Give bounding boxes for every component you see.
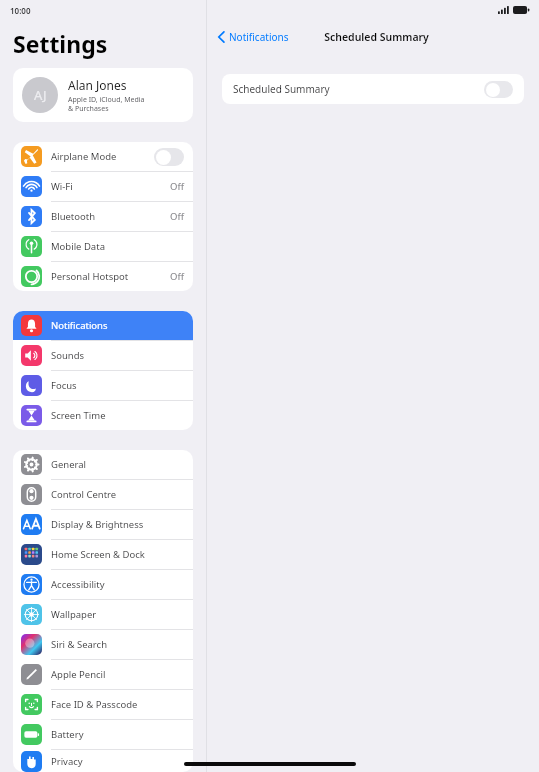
button[interactable]: Bluetooth (13, 202, 193, 231)
button[interactable]: Home Screen & Dock (13, 540, 193, 569)
staticText: AJ (34, 86, 47, 104)
button[interactable]: Wallpaper (13, 600, 193, 629)
staticText: Wi-Fi (51, 180, 73, 193)
button[interactable]: Control Centre (13, 480, 193, 509)
button[interactable]: Sounds (13, 341, 193, 370)
staticText: Scheduled Summary (233, 82, 330, 96)
button[interactable]: Screen Time (13, 401, 193, 430)
button[interactable]: Battery (13, 720, 193, 749)
button[interactable]: Personal Hotspot (13, 262, 193, 291)
staticText: Screen Time (51, 409, 106, 422)
button[interactable]: Display & Brightness (13, 510, 193, 539)
button[interactable]: General (13, 450, 193, 479)
staticText: Control Centre (51, 488, 117, 501)
staticText: Alan Jones (68, 77, 127, 93)
staticText: Battery (51, 728, 84, 741)
staticText: Bluetooth (51, 210, 96, 223)
staticText: Home Screen & Dock (51, 548, 145, 561)
staticText: Notifications (229, 30, 289, 44)
staticText: Focus (51, 379, 77, 392)
button[interactable]: Notifications (13, 311, 193, 340)
staticText: Siri & Search (51, 638, 108, 651)
staticText: Off (170, 270, 184, 283)
staticText: Airplane Mode (51, 150, 117, 163)
staticText: Scheduled Summary (324, 30, 429, 44)
staticText: Settings (13, 28, 108, 59)
button[interactable]: Face ID & Passcode (13, 690, 193, 719)
button[interactable]: Airplane Mode (13, 142, 193, 171)
button[interactable]: Scheduled Summary toggle (484, 81, 513, 98)
button[interactable]: AJ (13, 68, 193, 122)
button[interactable]: Focus (13, 371, 193, 400)
button[interactable]: Accessibility (13, 570, 193, 599)
staticText: Apple Pencil (51, 668, 106, 681)
staticText: Face ID & Passcode (51, 698, 138, 711)
staticText: Display & Brightness (51, 518, 144, 531)
button[interactable]: Airplane Mode toggle (154, 148, 184, 166)
button[interactable]: Notifications (215, 28, 292, 46)
button[interactable]: Siri & Search (13, 630, 193, 659)
staticText: Privacy (51, 755, 83, 768)
staticText: Off (170, 210, 184, 223)
staticText: Accessibility (51, 578, 105, 591)
staticText: Sounds (51, 349, 85, 362)
button[interactable]: Scheduled Summary (222, 74, 524, 104)
button[interactable]: Apple Pencil (13, 660, 193, 689)
staticText: Personal Hotspot (51, 270, 129, 283)
staticText: Apple ID, iCloud, Media & Purchases (68, 95, 145, 113)
staticText: Off (170, 180, 184, 193)
staticText: 10:00 (10, 5, 31, 16)
staticText: Wallpaper (51, 608, 97, 621)
staticText: General (51, 458, 87, 471)
staticText: Notifications (51, 319, 108, 332)
button[interactable]: Wi-Fi (13, 172, 193, 201)
button[interactable]: Privacy (13, 750, 193, 772)
button[interactable]: Mobile Data (13, 232, 193, 261)
staticText: Mobile Data (51, 240, 105, 253)
